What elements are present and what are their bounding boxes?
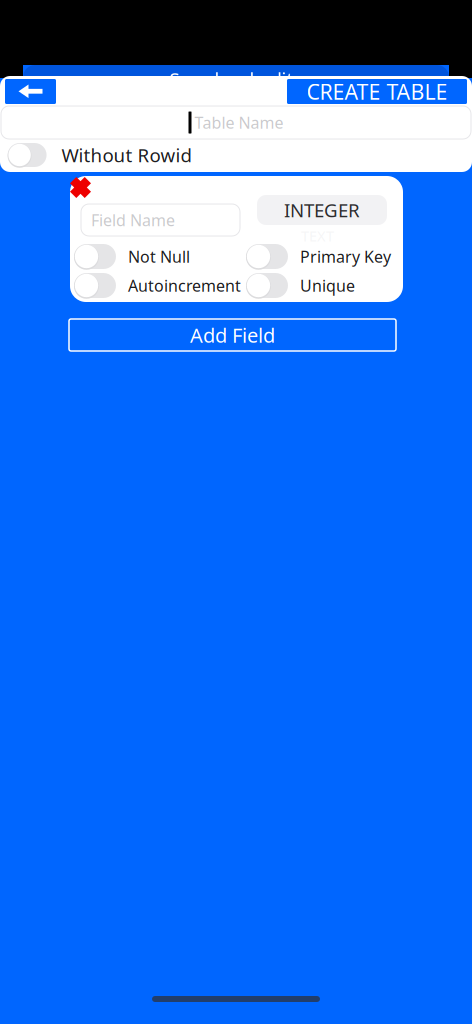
button[interactable]: CREATE TABLE (287, 79, 467, 104)
button[interactable]: Table Name (1, 106, 471, 139)
staticText: Not Null (128, 246, 190, 267)
button[interactable]: Unique (246, 273, 416, 298)
staticText: Table Name (194, 112, 283, 133)
staticText: Without Rowid (62, 143, 192, 167)
button[interactable]: Add Field (69, 319, 396, 351)
button[interactable]: Back (5, 79, 56, 104)
button[interactable]: Delete field (65, 172, 96, 203)
button[interactable]: INTEGER (257, 195, 387, 225)
button[interactable]: Autoincrement (74, 273, 254, 298)
staticText: Field Name (91, 209, 175, 231)
staticText: INTEGER (284, 198, 360, 222)
staticText: CREATE TABLE (306, 77, 447, 106)
staticText: Save local edits (169, 66, 302, 91)
button[interactable]: Field Name (81, 204, 240, 236)
staticText: Autoincrement (128, 275, 241, 296)
staticText: Unique (300, 275, 355, 296)
staticText: Add Field (190, 322, 275, 348)
button[interactable]: Without Rowid (8, 138, 308, 171)
button[interactable]: Not Null (74, 244, 244, 269)
button[interactable]: Primary Key (246, 244, 416, 269)
staticText: Primary Key (300, 246, 391, 267)
